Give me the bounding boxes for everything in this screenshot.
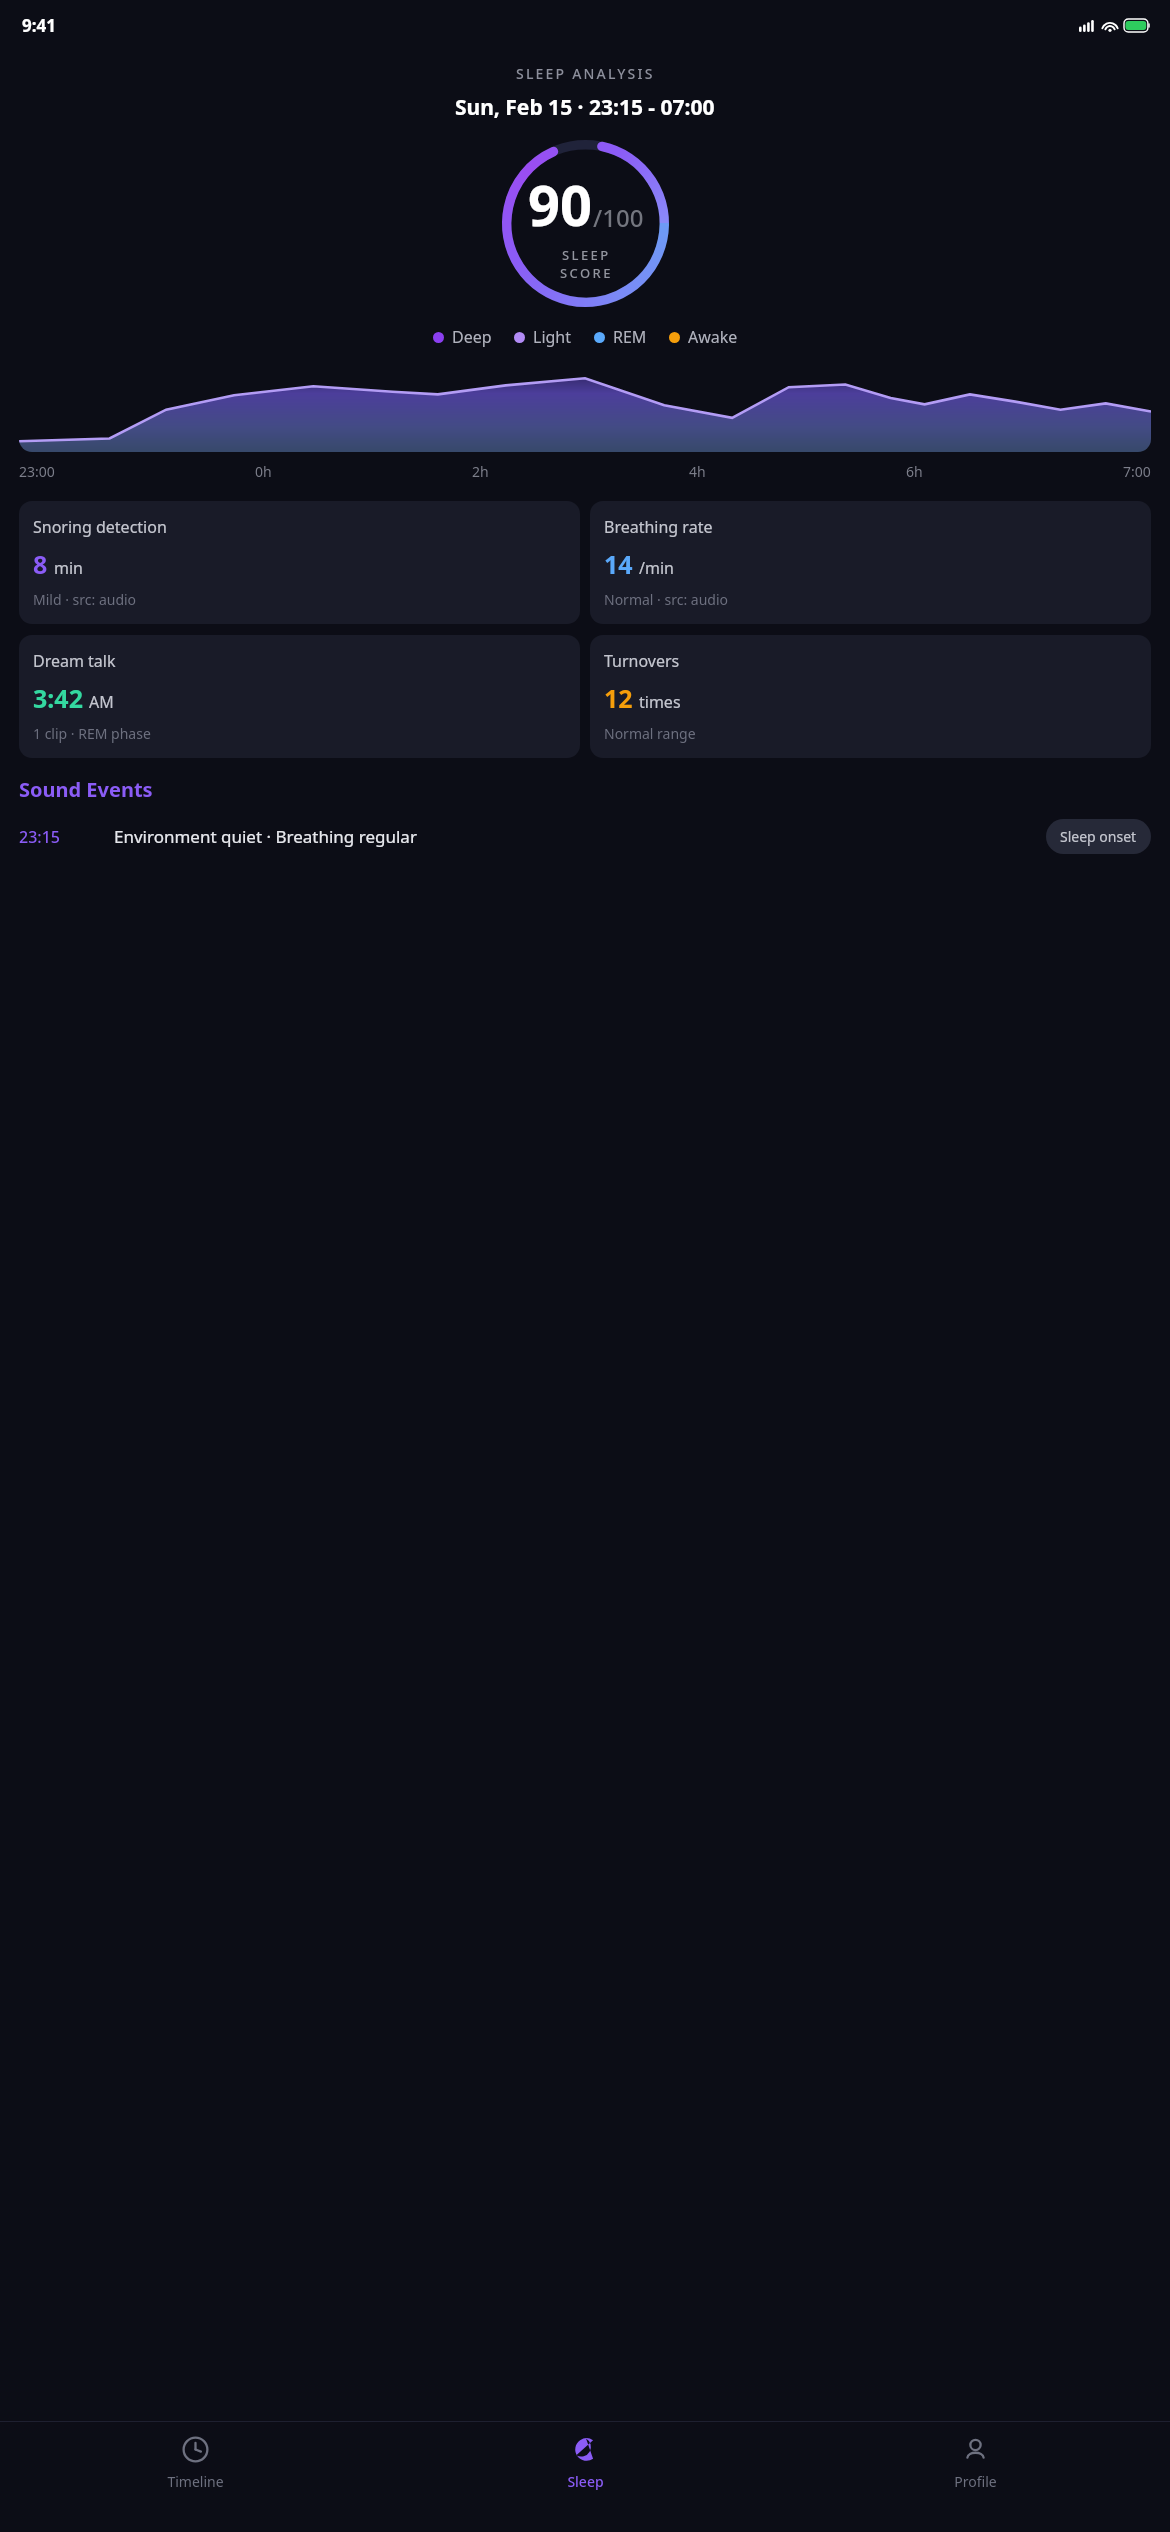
button[interactable]: Breathing rate [590,501,1151,624]
staticText: 4h [689,462,706,481]
staticText: Normal · src: audio [604,590,728,609]
button[interactable]: Timeline [0,2422,390,2532]
staticText: Mild · src: audio [33,590,137,609]
staticText: AM [89,691,114,713]
button[interactable]: Dream talk [19,635,580,758]
staticText: Sleep [567,2472,604,2491]
button[interactable]: Turnovers [590,635,1151,758]
staticText: 0h [255,462,272,481]
staticText: 7:00 [1123,462,1151,481]
staticText: /min [639,557,674,579]
staticText: Sound Events [19,776,153,803]
button[interactable]: Profile [780,2422,1170,2532]
staticText: 9:41 [22,14,56,37]
other: Profile [962,2436,989,2463]
staticText: REM [613,326,647,348]
other: Timeline [182,2436,209,2463]
staticText: min [54,557,83,579]
button[interactable]: 23:15 [19,819,1151,854]
staticText: Breathing rate [604,516,713,538]
staticText: 23:15 [19,826,114,848]
staticText: 12 [604,681,633,715]
staticText: Environment quiet · Breathing regular [114,825,1036,848]
staticText: 2h [472,462,489,481]
staticText: 23:00 [19,462,55,481]
staticText: SLEEP ANALYSIS [516,64,655,83]
staticText: Dream talk [33,650,116,672]
staticText: 3:42 [33,681,83,715]
staticText: SLEEP [562,246,611,264]
staticText: Snoring detection [33,516,167,538]
staticText: 8 [33,547,48,581]
staticText: 90 [528,166,593,242]
staticText: Timeline [167,2472,224,2491]
staticText: 14 [604,547,633,581]
staticText: Deep [452,326,492,348]
staticText: Profile [954,2472,997,2491]
button[interactable]: Sleep [390,2422,780,2532]
staticText: Sun, Feb 15 · 23:15 - 07:00 [455,93,715,122]
button[interactable]: Snoring detection [19,501,580,624]
staticText: 1 clip · REM phase [33,724,151,743]
staticText: Normal range [604,724,696,743]
staticText: SCORE [560,264,613,282]
staticText: Light [533,326,572,348]
staticText: Awake [688,326,738,348]
staticText: /100 [593,201,644,234]
other: Sleep [572,2436,599,2463]
staticText: 6h [906,462,923,481]
staticText: times [639,691,681,713]
staticText: Sleep onset [1060,827,1137,846]
staticText: Turnovers [604,650,680,672]
